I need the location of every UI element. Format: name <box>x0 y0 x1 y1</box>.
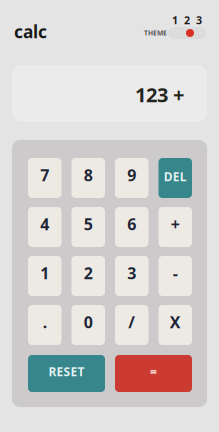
staticText: / <box>128 311 135 333</box>
button[interactable]: . <box>28 305 61 345</box>
button[interactable]: 0 <box>71 305 105 345</box>
staticText: 2 <box>184 13 190 27</box>
staticText: RESET <box>48 363 84 379</box>
staticText: + <box>171 213 180 235</box>
staticText: 3 <box>127 262 136 284</box>
button[interactable]: 8 <box>71 158 105 198</box>
button[interactable]: 6 <box>115 207 148 247</box>
staticText: 2 <box>84 262 93 284</box>
staticText: 6 <box>127 213 136 235</box>
staticText: 1 <box>40 262 49 284</box>
button[interactable]: DEL <box>158 158 192 198</box>
button[interactable]: X <box>158 305 192 345</box>
staticText: 8 <box>84 164 93 186</box>
staticText: THEME <box>144 29 167 37</box>
staticText: - <box>173 262 178 284</box>
button[interactable]: + <box>158 207 192 247</box>
staticText: 4 <box>40 213 49 235</box>
staticText: 0 <box>84 311 93 333</box>
button[interactable]: RESET <box>28 355 105 392</box>
button[interactable]: = <box>115 355 192 392</box>
staticText: 1 <box>172 13 178 27</box>
button[interactable]: 7 <box>28 158 61 198</box>
button[interactable]: / <box>115 305 148 345</box>
button[interactable]: 3 <box>115 256 148 296</box>
staticText: 3 <box>196 13 202 27</box>
staticText: 5 <box>84 213 93 235</box>
staticText: 123 + <box>135 81 184 108</box>
staticText: calc <box>14 20 47 43</box>
button[interactable]: 9 <box>115 158 148 198</box>
staticText: 7 <box>40 164 49 186</box>
button[interactable]: 4 <box>28 207 61 247</box>
staticText: 9 <box>127 164 136 186</box>
staticText: = <box>150 363 157 379</box>
staticText: DEL <box>164 168 187 184</box>
button[interactable]: 1 <box>28 256 61 296</box>
staticText: X <box>170 311 181 333</box>
button[interactable]: Theme <box>144 16 206 43</box>
staticText: . <box>43 311 47 333</box>
button[interactable]: 2 <box>71 256 105 296</box>
button[interactable]: - <box>158 256 192 296</box>
button[interactable]: 5 <box>71 207 105 247</box>
